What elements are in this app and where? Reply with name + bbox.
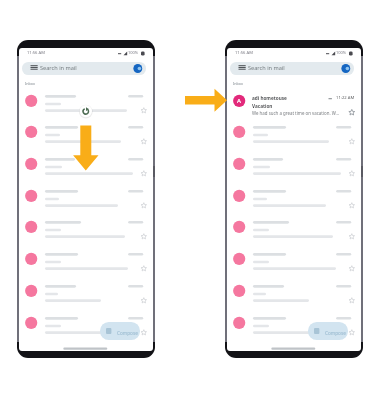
staticText: A [237, 97, 241, 105]
staticText: 100% [128, 50, 139, 55]
staticText: Vacation [252, 103, 273, 109]
staticText: 100% [336, 50, 347, 55]
staticText: Search in mail [40, 64, 77, 72]
button[interactable]: Search in mail [230, 62, 354, 75]
staticText: 11:22 AM [336, 95, 355, 101]
button[interactable]: Email conversation [19, 275, 153, 307]
button[interactable]: Email conversation [19, 307, 153, 339]
button[interactable]: Email conversation [227, 116, 361, 148]
button[interactable]: Email conversation [227, 307, 361, 339]
button[interactable]: Email conversation [227, 275, 361, 307]
button[interactable]: Email conversation [19, 211, 153, 243]
button[interactable]: Email conversation [19, 243, 153, 275]
staticText: adi hometouse [252, 95, 287, 101]
button[interactable]: Search in mail [22, 62, 146, 75]
staticText: Search in mail [248, 64, 285, 72]
button[interactable]: Email conversation [227, 211, 361, 243]
staticText: Inbox [25, 81, 35, 86]
staticText: 11:56 AM [235, 50, 253, 56]
button[interactable]: Compose [100, 322, 140, 340]
button[interactable]: A [227, 85, 361, 117]
button[interactable]: Email conversation [227, 148, 361, 180]
button[interactable]: Email conversation [227, 180, 361, 212]
button[interactable]: Email conversation [19, 148, 153, 180]
staticText: We had such a great time on vacation. W.… [252, 110, 340, 116]
button[interactable]: Compose [308, 322, 348, 340]
staticText: Inbox [233, 81, 243, 86]
button[interactable]: Email conversation [19, 116, 153, 148]
button[interactable]: Email conversation [19, 180, 153, 212]
staticText: 11:56 AM [27, 50, 45, 56]
staticText: Compose [325, 330, 346, 336]
staticText: Compose [117, 330, 138, 336]
button[interactable]: Email conversation [19, 85, 153, 117]
button[interactable]: Email conversation [227, 243, 361, 275]
